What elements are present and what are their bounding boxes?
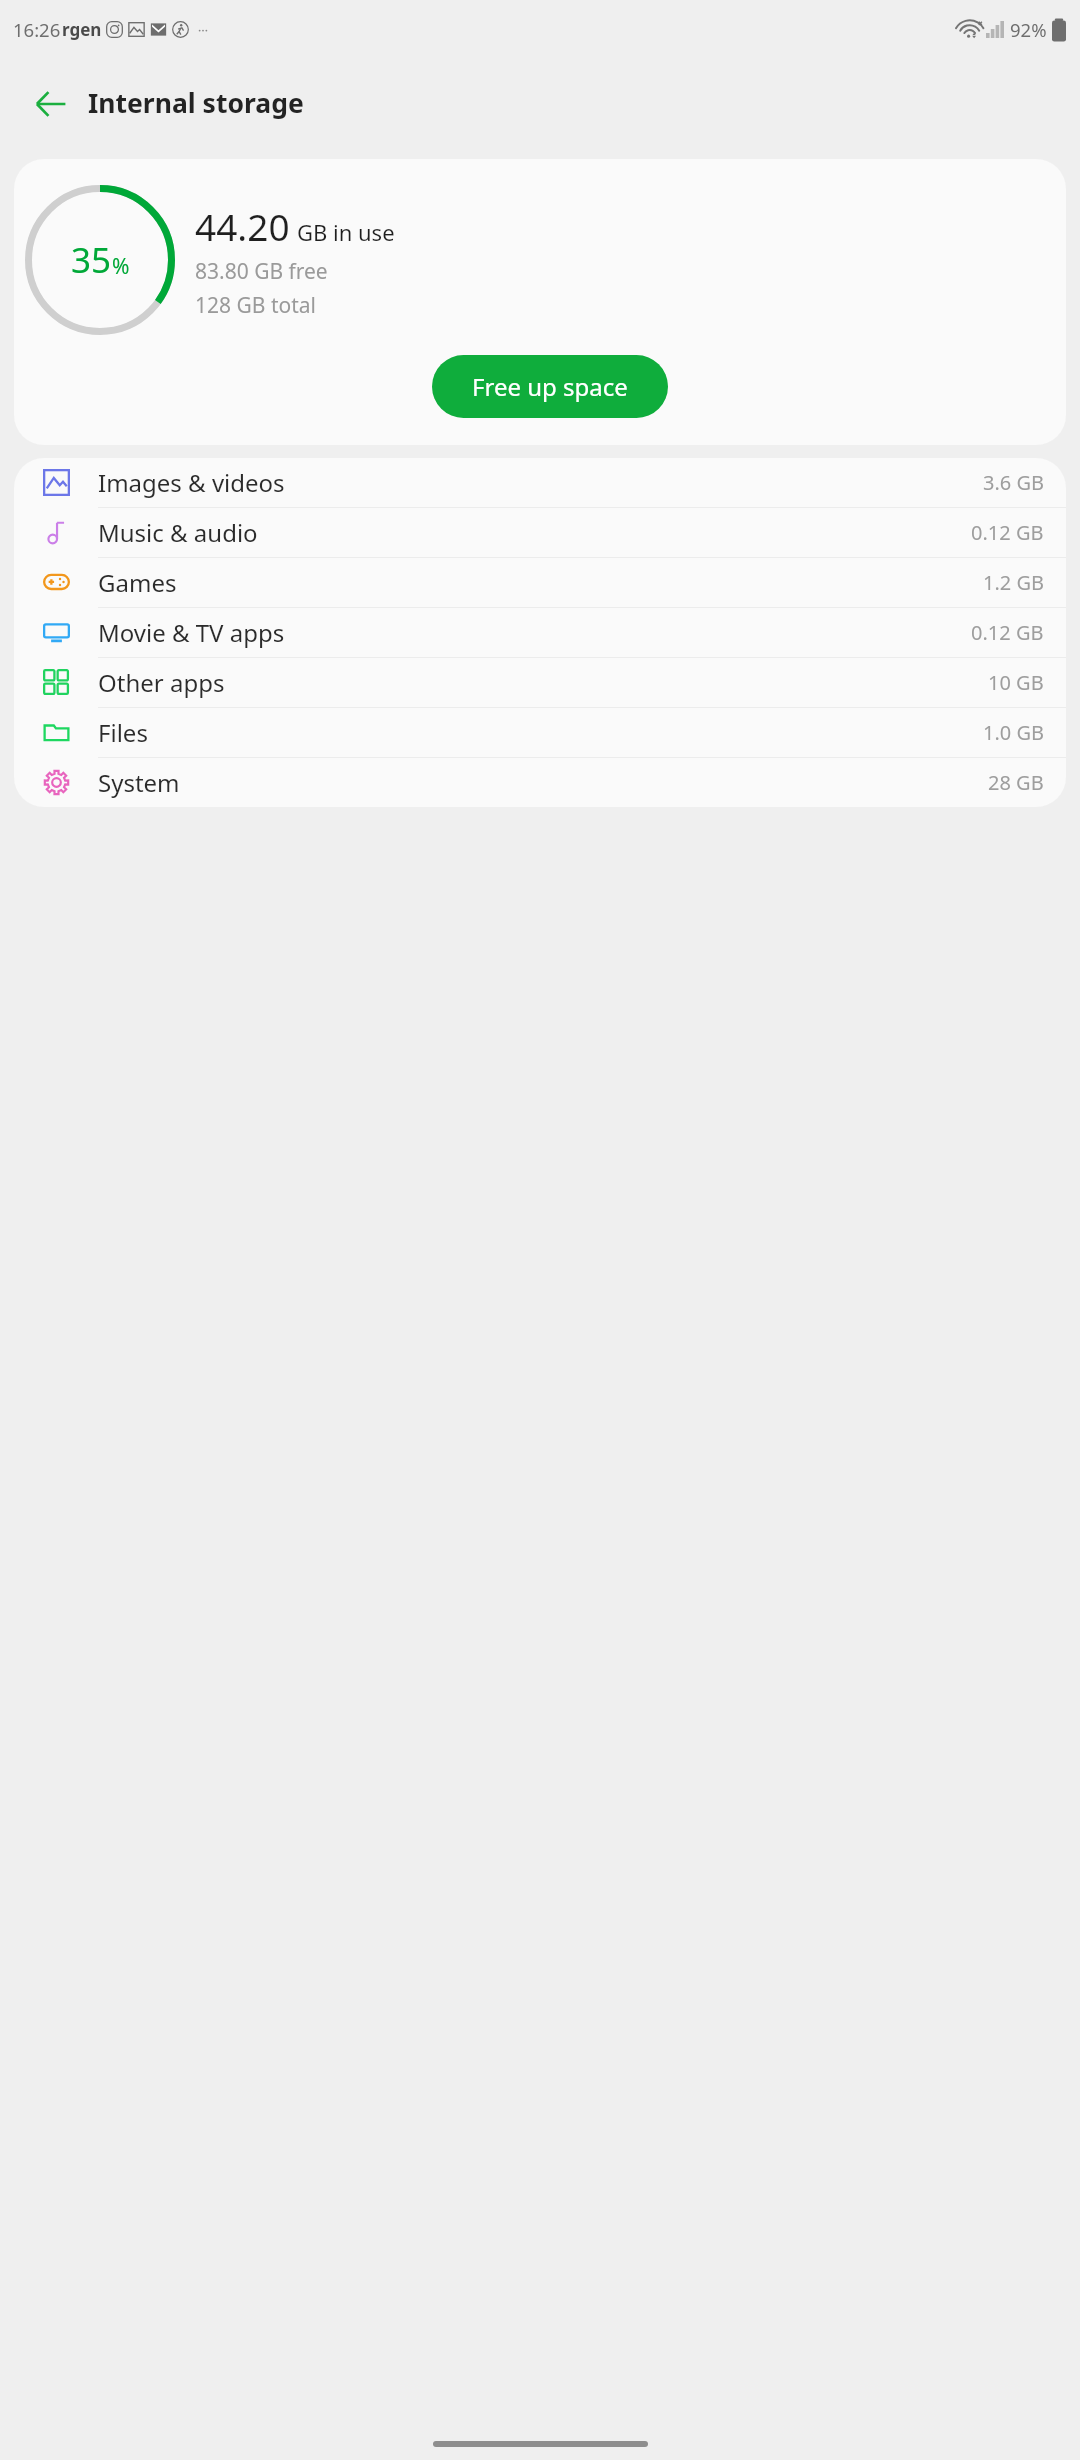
staticText: Files bbox=[98, 716, 148, 749]
button[interactable]: Music & audio bbox=[14, 508, 1066, 557]
staticText: Free up space bbox=[472, 370, 628, 403]
button[interactable]: System bbox=[14, 758, 1066, 807]
button[interactable]: Games bbox=[14, 558, 1066, 607]
staticText: System bbox=[98, 766, 180, 799]
staticText: 44.20 bbox=[195, 201, 290, 251]
button[interactable]: Movie & TV apps bbox=[14, 608, 1066, 657]
staticText: 0.12 GB bbox=[971, 519, 1044, 546]
button[interactable]: Other apps bbox=[14, 658, 1066, 707]
staticText: Internal storage bbox=[88, 85, 304, 121]
staticText: 1.0 GB bbox=[983, 719, 1044, 746]
staticText: 3.6 GB bbox=[983, 469, 1044, 496]
staticText: 83.80 GB free bbox=[195, 257, 328, 286]
staticText: rgen bbox=[62, 18, 102, 41]
staticText: 128 GB total bbox=[195, 291, 316, 320]
button[interactable]: Back bbox=[23, 76, 78, 131]
staticText: % bbox=[112, 252, 130, 281]
button[interactable]: Free up space bbox=[432, 355, 668, 418]
staticText: 92% bbox=[1010, 17, 1047, 42]
button[interactable]: Files bbox=[14, 708, 1066, 757]
staticText: GB in use bbox=[297, 217, 395, 247]
staticText: Images & videos bbox=[98, 466, 285, 499]
staticText: Movie & TV apps bbox=[98, 616, 285, 649]
staticText: Music & audio bbox=[98, 516, 258, 549]
staticText: 10 GB bbox=[988, 669, 1044, 696]
button[interactable]: Images & videos bbox=[14, 458, 1066, 507]
staticText: Games bbox=[98, 566, 177, 599]
staticText: 16:26 bbox=[13, 17, 61, 42]
staticText: 1.2 GB bbox=[983, 569, 1044, 596]
staticText: 28 GB bbox=[988, 769, 1044, 796]
staticText: Other apps bbox=[98, 666, 225, 699]
staticText: 35 bbox=[71, 236, 112, 284]
staticText: 0.12 GB bbox=[971, 619, 1044, 646]
